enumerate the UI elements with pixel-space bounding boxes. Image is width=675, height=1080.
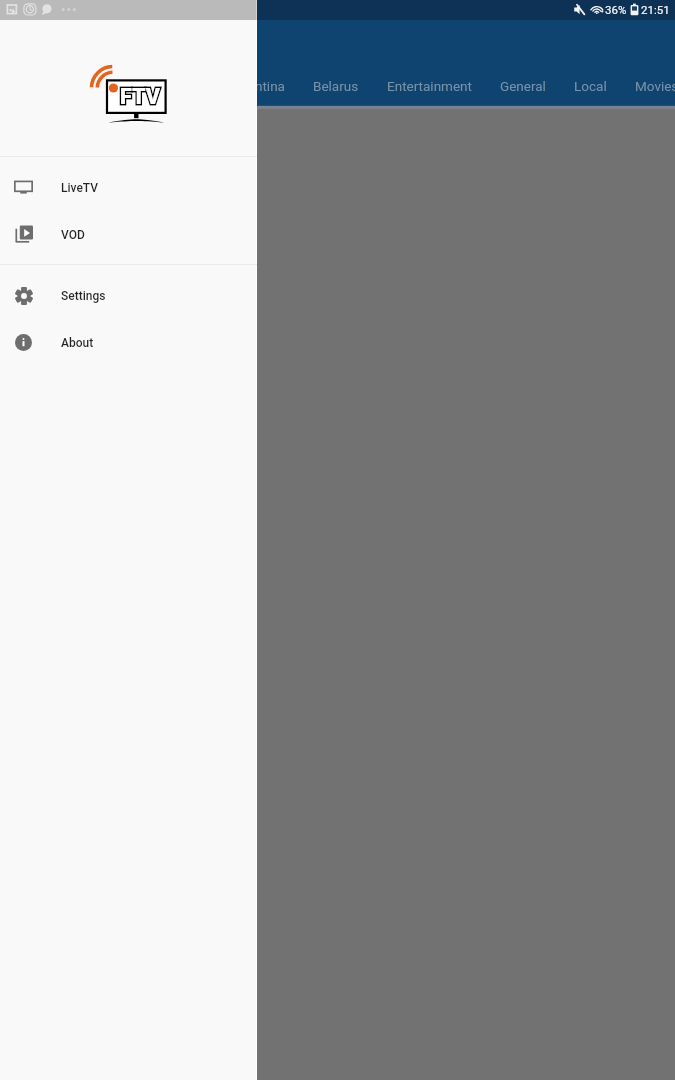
- staticText: Entertainment: [387, 78, 472, 94]
- button[interactable]: Argentina: [227, 78, 285, 94]
- button[interactable]: Close navigation drawer: [257, 0, 675, 1080]
- button[interactable]: General: [500, 78, 546, 94]
- staticText: VOD: [61, 228, 85, 242]
- staticText: Settings: [61, 289, 106, 303]
- staticText: FTV: [120, 84, 160, 109]
- staticText: 36%: [605, 3, 627, 16]
- button[interactable]: About: [0, 319, 257, 366]
- staticText: FTV: [120, 84, 160, 109]
- button[interactable]: Settings: [0, 272, 257, 319]
- staticText: Argentina: [227, 78, 285, 94]
- staticText: LiveTV: [61, 181, 99, 195]
- button[interactable]: LiveTV: [0, 164, 257, 211]
- button[interactable]: VOD: [0, 211, 257, 258]
- staticText: Local: [574, 78, 607, 94]
- button[interactable]: Belarus: [313, 78, 359, 94]
- button[interactable]: Movies: [635, 78, 675, 94]
- staticText: Belarus: [313, 78, 359, 94]
- button[interactable]: Local: [574, 78, 607, 94]
- staticText: Movies: [635, 78, 675, 94]
- staticText: 21:51: [641, 3, 670, 16]
- button[interactable]: FTV home: [0, 20, 257, 156]
- staticText: About: [61, 336, 94, 350]
- staticText: General: [500, 78, 546, 94]
- button[interactable]: Entertainment: [387, 78, 472, 94]
